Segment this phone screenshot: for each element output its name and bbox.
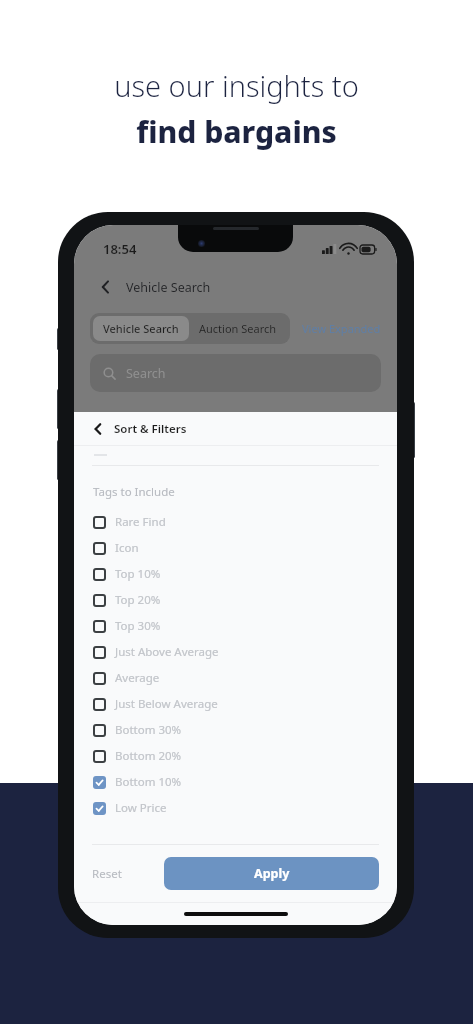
staticText: View Expanded bbox=[302, 321, 381, 336]
button[interactable]: Icon bbox=[74, 535, 397, 561]
button[interactable]: Average bbox=[74, 665, 397, 691]
staticText: Just Below Average bbox=[115, 696, 218, 712]
button[interactable]: Search bbox=[90, 354, 381, 392]
button[interactable]: Apply bbox=[164, 857, 379, 890]
staticText: Just Above Average bbox=[115, 644, 219, 660]
staticText: Low Price bbox=[115, 800, 167, 816]
button[interactable]: Top 20% bbox=[74, 587, 397, 613]
staticText: Top 30% bbox=[115, 618, 161, 634]
staticText: Top 20% bbox=[115, 592, 161, 608]
button[interactable]: Reset bbox=[92, 866, 130, 882]
staticText: Top 10% bbox=[115, 566, 161, 582]
staticText: Bottom 10% bbox=[115, 774, 182, 790]
staticText: Rare Find bbox=[115, 514, 166, 530]
staticText: Search bbox=[126, 365, 166, 382]
button[interactable]: Bottom 10% bbox=[74, 769, 397, 795]
staticText: Reset bbox=[92, 866, 122, 882]
button[interactable]: Top 10% bbox=[74, 561, 397, 587]
button[interactable]: Just Below Average bbox=[74, 691, 397, 717]
button[interactable]: Top 30% bbox=[74, 613, 397, 639]
staticText: Bottom 30% bbox=[115, 722, 182, 738]
button[interactable]: Just Above Average bbox=[74, 639, 397, 665]
staticText: Auction Search bbox=[199, 321, 277, 336]
staticText: Vehicle Search bbox=[103, 321, 179, 336]
staticText: Average bbox=[115, 670, 160, 686]
button[interactable]: Bottom 20% bbox=[74, 743, 397, 769]
staticText: Vehicle Search bbox=[126, 279, 211, 296]
staticText: find bargains bbox=[136, 111, 337, 152]
staticText: Icon bbox=[115, 540, 139, 556]
button[interactable]: Rare Find bbox=[74, 509, 397, 535]
staticText: Apply bbox=[254, 865, 290, 882]
button[interactable]: Back bbox=[85, 416, 111, 442]
staticText: Tags to Include bbox=[93, 484, 175, 500]
button[interactable]: Auction Search bbox=[189, 316, 287, 341]
staticText: Bottom 20% bbox=[115, 748, 182, 764]
staticText: use our insights to bbox=[114, 66, 359, 105]
staticText: Sort & Filters bbox=[114, 421, 187, 437]
button[interactable]: View Expanded bbox=[302, 321, 381, 336]
button[interactable]: Back bbox=[90, 272, 120, 302]
button[interactable]: Bottom 30% bbox=[74, 717, 397, 743]
button[interactable]: Low Price bbox=[74, 795, 397, 821]
staticText: 18:54 bbox=[103, 240, 137, 258]
button[interactable]: Vehicle Search bbox=[93, 316, 189, 341]
